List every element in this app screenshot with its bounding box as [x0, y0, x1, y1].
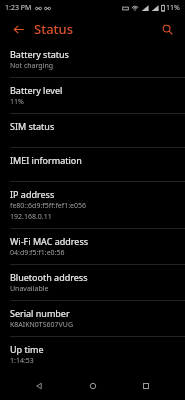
staticText: Unavailable [10, 284, 49, 294]
staticText: Battery level [10, 84, 63, 96]
staticText: Bluetooth address [10, 271, 88, 283]
staticText: Battery status [10, 48, 69, 60]
staticText: K8AIKN0TS607VUG [10, 320, 73, 330]
staticText: SIM status [10, 120, 55, 132]
button[interactable]: Serial number [0, 301, 185, 336]
button[interactable]: Search [157, 19, 177, 39]
staticText: fe80::6d9:f5ff:fef1:e056 [10, 201, 87, 211]
staticText: 192.168.0.11 [10, 212, 52, 222]
button[interactable]: Back [25, 372, 53, 400]
button[interactable]: Recents [132, 372, 160, 400]
staticText: IP address [10, 188, 55, 200]
staticText: Status [34, 20, 74, 38]
staticText: Not charging [10, 61, 54, 71]
button[interactable]: IMEI information [0, 148, 185, 181]
staticText: Wi-Fi MAC address [10, 235, 89, 247]
staticText: 1:14:53 [10, 356, 34, 366]
staticText: 11% [10, 97, 24, 107]
button[interactable]: Bluetooth address [0, 265, 185, 300]
staticText: IMEI information [10, 154, 82, 166]
staticText: Up time [10, 343, 44, 355]
button[interactable]: Back [8, 19, 28, 39]
button[interactable]: Wi-Fi MAC address [0, 229, 185, 264]
button[interactable]: Up time [0, 337, 185, 372]
button[interactable]: Battery level [0, 78, 185, 113]
staticText: 04:d9:f5:f1:e0:56 [10, 248, 65, 258]
button[interactable]: SIM status [0, 114, 185, 147]
staticText: 11% [166, 3, 180, 13]
staticText: Serial number [10, 307, 70, 319]
button[interactable]: Home [79, 372, 107, 400]
button[interactable]: IP address [0, 182, 185, 228]
staticText: 1:23 PM [5, 3, 32, 13]
button[interactable]: Battery status [0, 42, 185, 77]
